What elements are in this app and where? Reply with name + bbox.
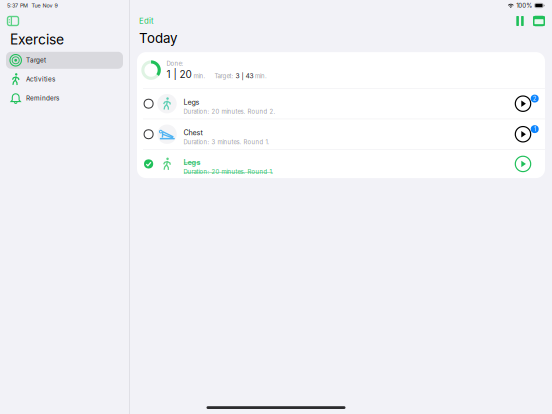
button[interactable]: Pause <box>511 13 529 29</box>
staticText: 2 <box>533 95 537 102</box>
button[interactable]: Reminders <box>6 90 123 107</box>
staticText: min. <box>193 73 205 80</box>
button[interactable]: Target <box>6 52 123 69</box>
staticText: Edit <box>139 16 154 26</box>
staticText: 3 | 43 <box>235 72 253 80</box>
staticText: min. <box>255 73 267 80</box>
button[interactable]: Edit <box>135 13 158 28</box>
staticText: Chest <box>183 128 202 137</box>
button[interactable]: Start Legs <box>501 89 545 119</box>
staticText: Target: <box>214 73 233 80</box>
button[interactable]: Toggle Sidebar <box>2 13 24 29</box>
staticText: Activities <box>26 75 55 83</box>
staticText: 5:37 PM <box>7 2 28 9</box>
staticText: Today <box>139 30 177 46</box>
button[interactable]: Start Chest <box>501 119 545 149</box>
staticText: Duration: 3 minutes. Round 1. <box>183 139 269 146</box>
button[interactable]: Mark complete <box>137 89 160 119</box>
staticText: Done: <box>166 60 183 67</box>
button[interactable]: Calendar <box>529 13 549 29</box>
staticText: 1 <box>534 126 536 133</box>
staticText: Exercise <box>10 31 64 48</box>
staticText: 100% <box>516 2 532 9</box>
button[interactable]: Completed <box>137 150 160 178</box>
staticText: 1 | 20 <box>166 68 191 80</box>
staticText: Legs <box>183 158 200 167</box>
button[interactable]: Start Legs <box>501 150 545 178</box>
staticText: Duration: 20 minutes. Round 1. <box>183 168 273 175</box>
staticText: Legs <box>183 98 199 106</box>
button[interactable]: Mark complete <box>137 119 160 149</box>
button[interactable]: Activities <box>6 71 123 88</box>
staticText: Duration: 20 minutes. Round 2. <box>183 108 275 115</box>
staticText: Tue Nov 9 <box>32 2 58 9</box>
staticText: Reminders <box>26 94 59 102</box>
staticText: Target <box>26 56 46 64</box>
